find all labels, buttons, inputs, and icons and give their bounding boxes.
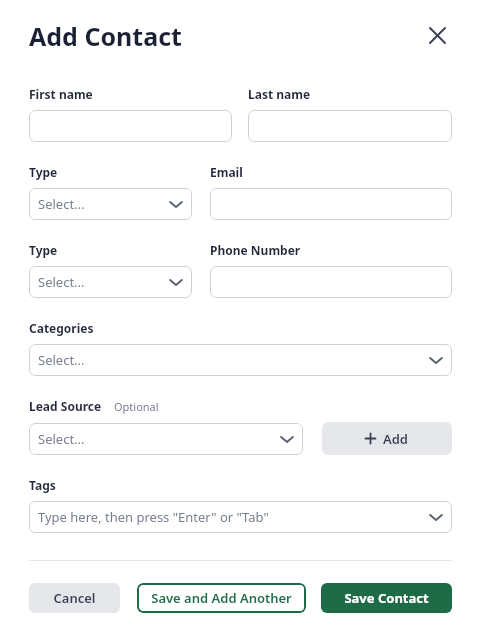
staticText: Lead Source	[29, 398, 102, 414]
button[interactable]	[210, 188, 452, 220]
button[interactable]: Add	[322, 422, 452, 455]
staticText: Last name	[248, 86, 311, 102]
button[interactable]: Select...	[29, 188, 192, 220]
staticText: Phone Number	[210, 242, 301, 258]
staticText: Tags	[29, 477, 56, 493]
staticText: Categories	[29, 320, 94, 336]
button[interactable]: Select...	[29, 423, 303, 455]
staticText: Save and Add Another	[151, 589, 292, 607]
button[interactable]	[248, 110, 452, 142]
button[interactable]: Select...	[29, 266, 192, 298]
button[interactable]: Select...	[29, 344, 452, 376]
button[interactable]	[29, 110, 232, 142]
button[interactable]: Save Contact	[321, 583, 452, 613]
staticText: Cancel	[53, 589, 96, 607]
staticText: Add	[383, 430, 409, 448]
staticText: Type	[29, 164, 58, 180]
staticText: Save Contact	[344, 589, 429, 607]
button[interactable]: Type here, then press "Enter" or "Tab"	[29, 501, 452, 533]
staticText: Optional	[114, 399, 159, 414]
staticText: Select...	[38, 195, 169, 213]
staticText: Email	[210, 164, 243, 180]
staticText: Type	[29, 242, 58, 258]
staticText: Select...	[38, 273, 169, 291]
button[interactable]: Save and Add Another	[137, 583, 306, 613]
button[interactable]: Close	[422, 20, 452, 50]
button[interactable]	[210, 266, 452, 298]
staticText: Select...	[38, 430, 280, 448]
staticText: Add Contact	[29, 19, 422, 51]
staticText: First name	[29, 86, 93, 102]
staticText: Select...	[38, 351, 429, 369]
button[interactable]: Cancel	[29, 583, 120, 613]
staticText: Type here, then press "Enter" or "Tab"	[38, 508, 429, 526]
